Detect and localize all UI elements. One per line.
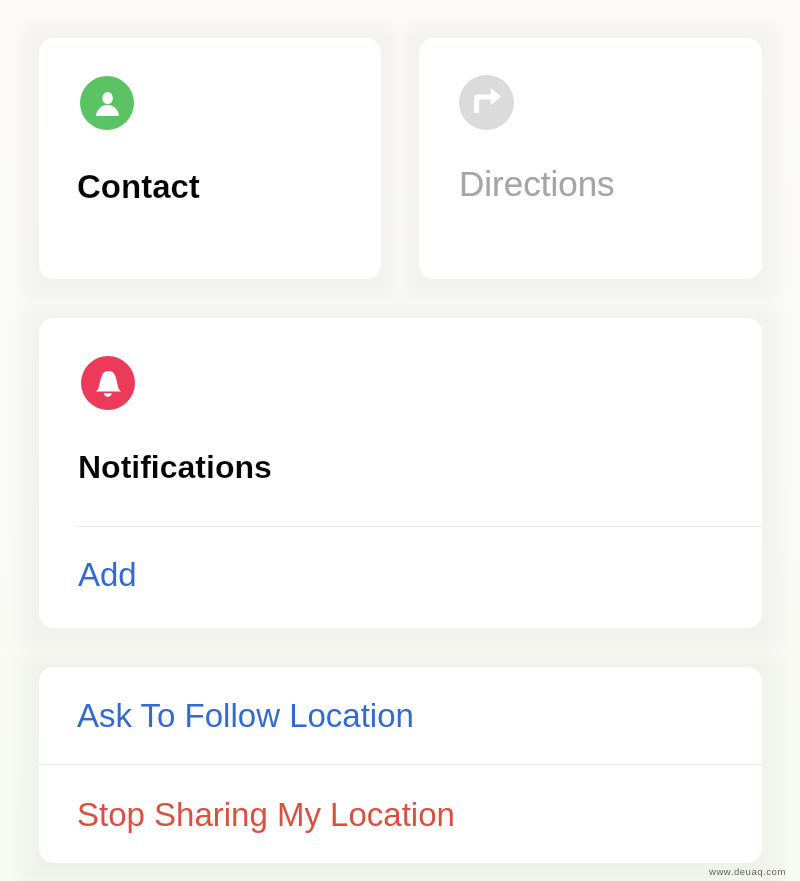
other: Notifications <box>81 356 135 410</box>
staticText: Notifications <box>78 449 272 485</box>
staticText: Stop Sharing My Location <box>77 796 455 833</box>
staticText: Add <box>78 556 137 593</box>
staticText: www.deuaq.com <box>709 866 786 877</box>
staticText: Ask To Follow Location <box>77 697 414 734</box>
button[interactable]: Notifications <box>39 318 762 526</box>
staticText: Directions <box>459 164 615 203</box>
staticText: Contact <box>77 168 200 205</box>
button[interactable]: Directions <box>419 38 762 279</box>
button[interactable]: Contact <box>39 38 381 279</box>
button[interactable]: Stop Sharing My Location <box>39 765 762 863</box>
button[interactable]: Add <box>39 527 762 628</box>
button[interactable]: Ask To Follow Location <box>39 667 762 764</box>
